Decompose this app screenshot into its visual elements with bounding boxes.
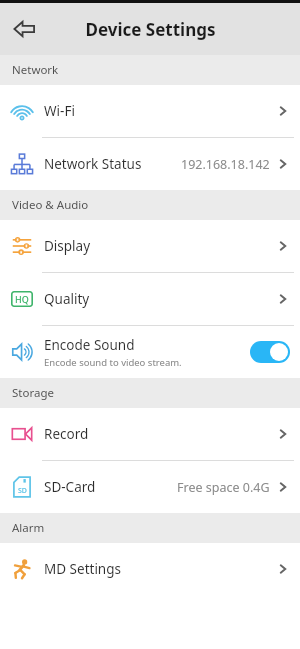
staticText: MD Settings bbox=[44, 560, 121, 578]
staticText: Record bbox=[44, 425, 89, 443]
staticText: Network Status bbox=[44, 155, 142, 173]
staticText: Free space 0.4G bbox=[177, 479, 270, 496]
button[interactable]: Display bbox=[0, 220, 300, 272]
staticText: Network bbox=[12, 62, 59, 78]
staticText: Alarm bbox=[12, 520, 45, 536]
button[interactable]: Encode Sound bbox=[0, 326, 300, 378]
staticText: Device Settings bbox=[85, 18, 216, 41]
button[interactable]: Back bbox=[0, 5, 48, 53]
staticText: Storage bbox=[12, 385, 54, 401]
staticText: Video & Audio bbox=[12, 197, 89, 213]
staticText: Encode Sound bbox=[44, 336, 135, 354]
staticText: HQ bbox=[15, 293, 29, 305]
staticText: SD-Card bbox=[44, 478, 96, 496]
staticText: Display bbox=[44, 237, 91, 255]
button[interactable]: HQ bbox=[0, 273, 300, 325]
button[interactable]: Record bbox=[0, 408, 300, 460]
staticText: Quality bbox=[44, 290, 90, 308]
staticText: 192.168.18.142 bbox=[181, 156, 270, 173]
button[interactable]: Encode Sound toggle bbox=[250, 341, 290, 363]
staticText: SD bbox=[18, 486, 27, 496]
button[interactable]: Network Status bbox=[0, 138, 300, 190]
staticText: Wi-Fi bbox=[44, 102, 75, 120]
button[interactable]: SD bbox=[0, 461, 300, 513]
button[interactable]: Wi-Fi bbox=[0, 85, 300, 137]
button[interactable]: MD Settings bbox=[0, 543, 300, 595]
staticText: Encode sound to video stream. bbox=[44, 356, 182, 369]
